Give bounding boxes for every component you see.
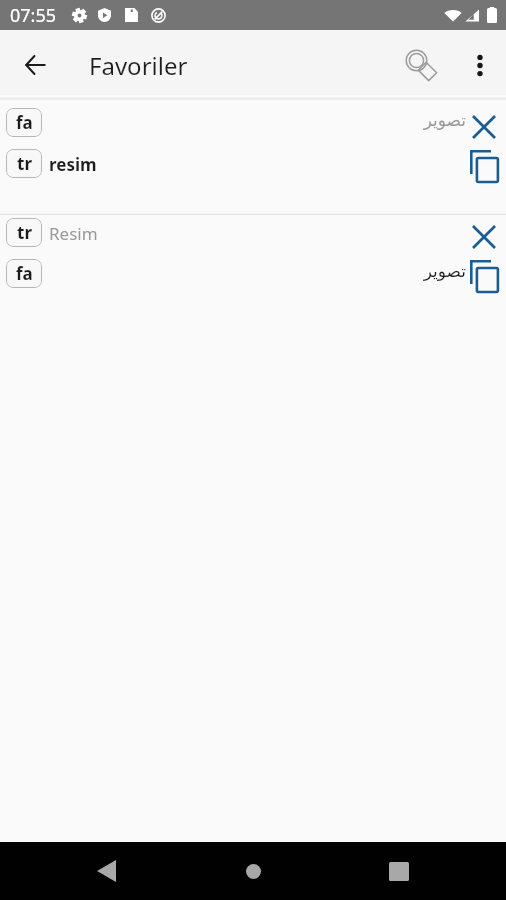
- staticText: tr: [17, 152, 32, 175]
- staticText: resim: [49, 153, 466, 176]
- button[interactable]: Back: [82, 847, 130, 895]
- staticText: fa: [16, 111, 33, 134]
- staticText: Resim: [49, 222, 466, 245]
- button[interactable]: Remove favorite: [466, 102, 502, 143]
- button[interactable]: More options: [460, 45, 500, 85]
- staticText: 07:55: [10, 3, 57, 28]
- button[interactable]: Home: [229, 847, 277, 895]
- staticText: tr: [17, 221, 32, 244]
- button[interactable]: Copy: [466, 143, 502, 184]
- staticText: تصوير: [49, 261, 466, 281]
- button[interactable]: Search: [400, 43, 444, 87]
- staticText: fa: [16, 262, 33, 285]
- button[interactable]: Recent apps: [375, 847, 423, 895]
- button[interactable]: fa: [0, 102, 506, 184]
- button[interactable]: Remove favorite: [466, 212, 502, 253]
- staticText: تصوير: [49, 110, 466, 130]
- button[interactable]: Back: [13, 43, 57, 87]
- button[interactable]: Copy: [466, 253, 502, 294]
- staticText: Favoriler: [89, 49, 188, 82]
- button[interactable]: tr: [0, 212, 506, 294]
